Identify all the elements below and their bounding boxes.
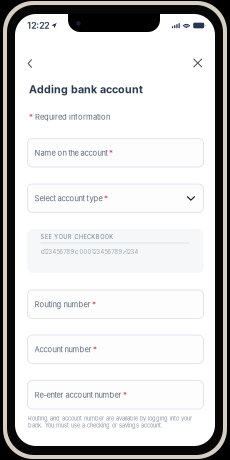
- staticText: *: [104, 193, 108, 203]
- staticText: SEE YOUR CHECKBOOK: [40, 234, 113, 240]
- button[interactable]: Name on the account: [27, 138, 203, 167]
- staticText: Adding bank account: [29, 83, 143, 96]
- staticText: *: [123, 390, 127, 400]
- button[interactable]: Re-enter account number: [27, 380, 203, 409]
- staticText: *: [92, 299, 96, 309]
- staticText: Name on the account: [34, 148, 107, 157]
- staticText: *: [29, 112, 33, 122]
- staticText: Required information: [35, 112, 110, 122]
- staticText: ⑆123456789⑆ 000123456789⑇1234: [40, 248, 138, 255]
- button[interactable]: Select account type: [27, 184, 203, 212]
- staticText: Re-enter account number: [34, 390, 121, 399]
- staticText: Account number: [34, 345, 91, 354]
- staticText: Routing number: [34, 300, 90, 309]
- button[interactable]: Back: [27, 54, 49, 72]
- staticText: *: [109, 148, 113, 158]
- button[interactable]: Routing number: [27, 290, 203, 318]
- button[interactable]: Close: [180, 54, 202, 72]
- staticText: Routing and account number are available…: [28, 415, 192, 429]
- staticText: 12:22: [27, 20, 49, 31]
- button[interactable]: Account number: [27, 335, 203, 363]
- staticText: *: [93, 344, 97, 354]
- staticText: Select account type: [34, 194, 102, 203]
